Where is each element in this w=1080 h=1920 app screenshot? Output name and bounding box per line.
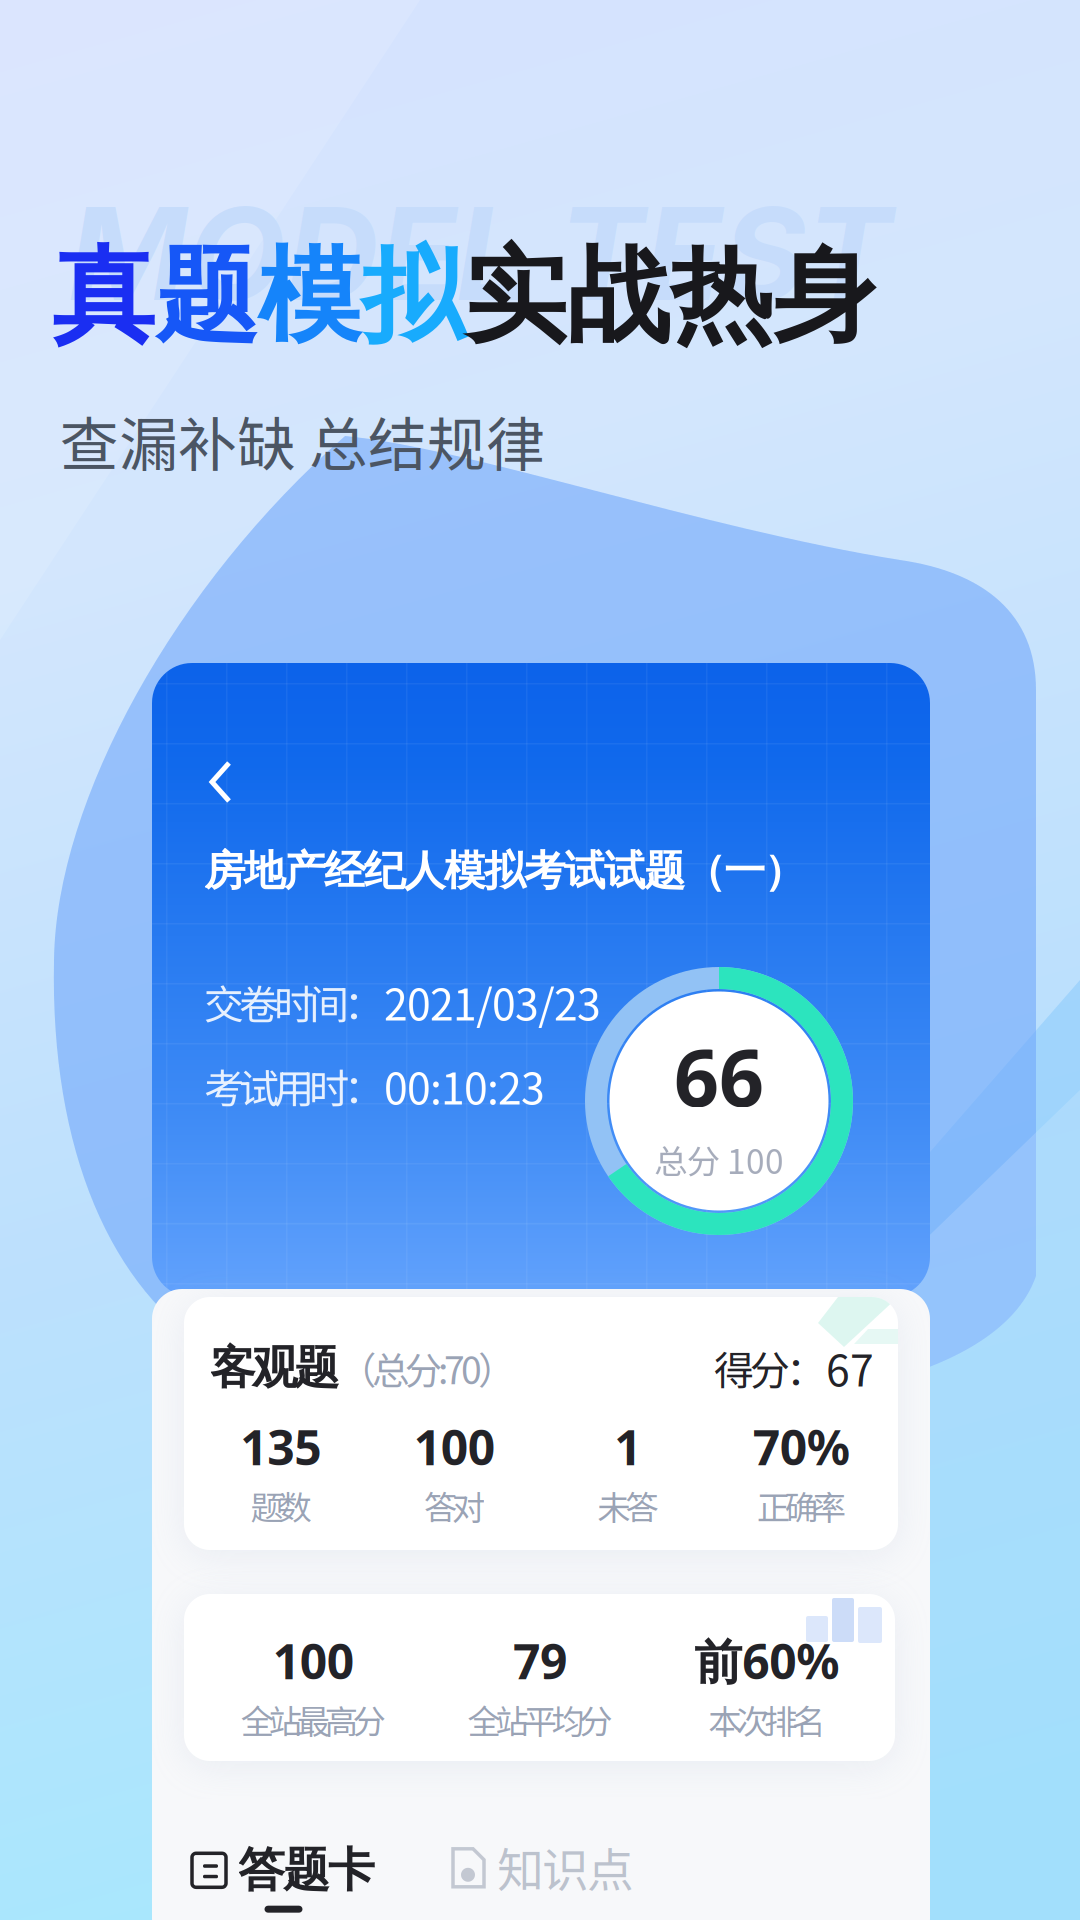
staticText: 房地产经纪人模拟考试试题（一） <box>204 845 805 897</box>
staticText: 客观题 <box>210 1339 339 1396</box>
staticText: 100 <box>273 1628 354 1693</box>
button[interactable]: 答题卡 <box>192 1841 375 1913</box>
staticText: 79 <box>513 1628 567 1693</box>
staticText: 真 <box>52 232 155 361</box>
staticText: 全站平均分 <box>467 1695 612 1744</box>
staticText: 前60% <box>694 1628 839 1693</box>
staticText: 拟 <box>361 232 464 361</box>
staticText: 100 <box>414 1414 495 1479</box>
staticText: 考试用时： <box>204 1057 384 1115</box>
staticText: 答题卡 <box>238 1841 375 1900</box>
button[interactable]: 知识点 <box>451 1833 634 1920</box>
staticText: 正确率 <box>757 1481 846 1530</box>
staticText: 2021/03/23 <box>384 971 601 1033</box>
button[interactable]: Back <box>188 739 254 825</box>
staticText: 得分： <box>714 1339 826 1397</box>
staticText: 1 <box>614 1414 641 1479</box>
staticText: 交卷时间： <box>204 973 384 1031</box>
staticText: 知识点 <box>497 1833 634 1901</box>
staticText: 未答 <box>597 1481 658 1530</box>
staticText: （总分:70） <box>339 1341 515 1395</box>
staticText: 查漏补缺 总结规律 <box>60 398 545 483</box>
staticText: 实战热身 <box>464 232 876 361</box>
staticText: 答对 <box>424 1481 485 1530</box>
staticText: 总分 100 <box>654 1135 784 1184</box>
staticText: 135 <box>240 1414 321 1479</box>
staticText: 本次排名 <box>708 1695 825 1744</box>
staticText: 模 <box>258 232 361 361</box>
staticText: MODEL TEST <box>68 176 892 331</box>
staticText: 题数 <box>250 1481 311 1530</box>
staticText: 70% <box>753 1414 850 1479</box>
staticText: 00:10:23 <box>384 1055 545 1117</box>
staticText: 题 <box>155 232 258 361</box>
staticText: 66 <box>674 1022 764 1129</box>
staticText: 全站最高分 <box>241 1695 386 1744</box>
staticText: 67 <box>826 1337 874 1399</box>
